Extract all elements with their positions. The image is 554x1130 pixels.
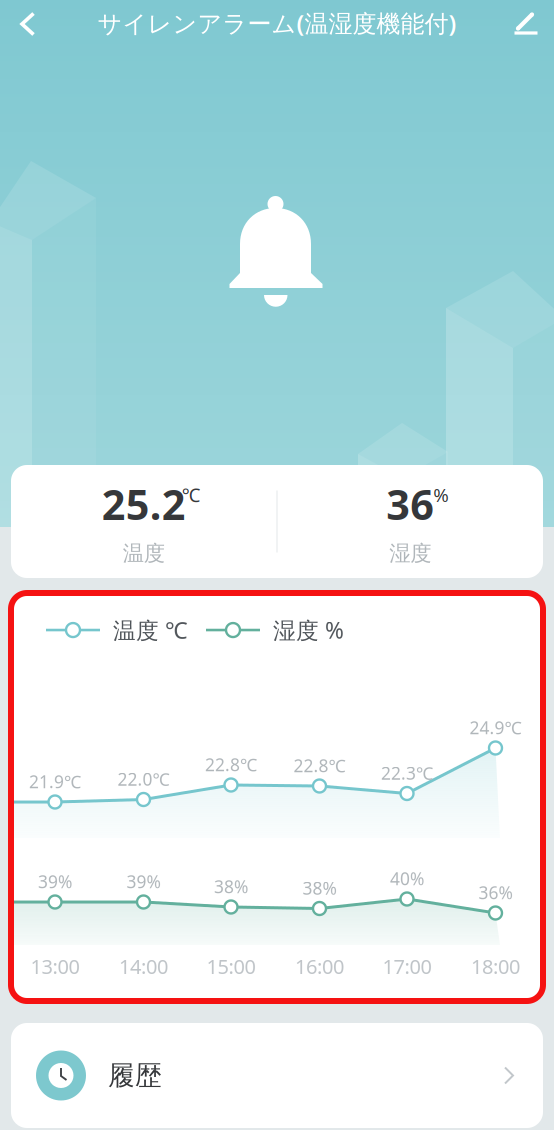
staticText: 24.9℃ bbox=[469, 716, 521, 739]
staticText: 36% bbox=[478, 881, 512, 904]
staticText: 湿度 bbox=[389, 540, 431, 566]
staticText: 温度 bbox=[123, 540, 165, 566]
button[interactable]: 履歴 bbox=[0, 1023, 554, 1128]
staticText: 39% bbox=[126, 870, 160, 893]
staticText: 18:00 bbox=[471, 953, 520, 980]
staticText: 40% bbox=[390, 867, 424, 890]
staticText: 湿度 % bbox=[273, 615, 344, 645]
staticText: サイレンアラーム(温湿度機能付) bbox=[97, 7, 456, 39]
staticText: 36 bbox=[386, 476, 434, 531]
staticText: 温度 ℃ bbox=[113, 615, 188, 645]
staticText: 21.9℃ bbox=[29, 770, 81, 793]
staticText: 38% bbox=[302, 876, 336, 899]
staticText: % bbox=[433, 482, 449, 507]
staticText: 17:00 bbox=[382, 953, 431, 980]
staticText: 履歴 bbox=[108, 1059, 162, 1092]
button[interactable]: Back bbox=[2, 0, 54, 44]
staticText: 22.8℃ bbox=[293, 754, 345, 777]
staticText: 22.8℃ bbox=[205, 753, 257, 776]
staticText: 14:00 bbox=[119, 953, 168, 980]
staticText: ℃ bbox=[182, 482, 201, 507]
staticText: 39% bbox=[38, 870, 72, 893]
staticText: 22.3℃ bbox=[381, 761, 433, 784]
staticText: 22.0℃ bbox=[117, 767, 169, 790]
staticText: 13:00 bbox=[30, 953, 79, 980]
button[interactable]: Edit bbox=[500, 0, 552, 44]
staticText: 25.2 bbox=[102, 476, 186, 531]
staticText: 38% bbox=[214, 875, 248, 898]
staticText: 15:00 bbox=[206, 953, 255, 980]
staticText: 16:00 bbox=[295, 953, 344, 980]
